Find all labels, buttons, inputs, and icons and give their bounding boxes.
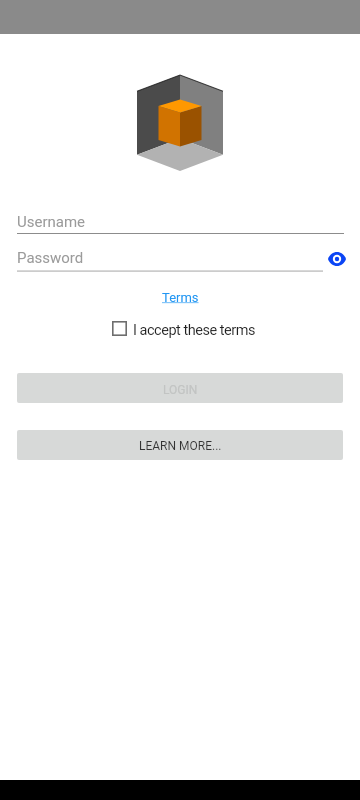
staticText: LOGIN bbox=[163, 383, 198, 397]
button[interactable]: Show password bbox=[325, 247, 349, 271]
staticText: Password bbox=[17, 249, 84, 267]
staticText: Username bbox=[17, 213, 86, 231]
staticText: LEARN MORE... bbox=[139, 439, 222, 453]
staticText: I accept these terms bbox=[133, 322, 255, 339]
button[interactable]: LEARN MORE... bbox=[17, 430, 343, 460]
button[interactable]: I accept these terms bbox=[104, 316, 255, 340]
button[interactable]: Terms bbox=[162, 290, 199, 305]
